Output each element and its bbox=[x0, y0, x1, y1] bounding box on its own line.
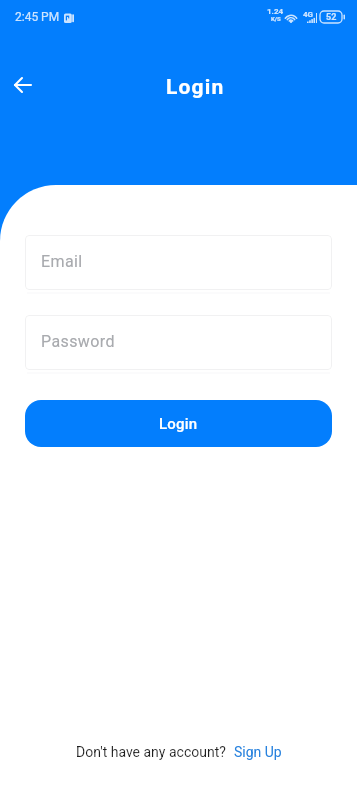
button[interactable]: Back bbox=[1, 65, 45, 105]
staticText: Sign Up bbox=[234, 744, 282, 760]
staticText: 1.24 bbox=[267, 7, 284, 16]
staticText: Email bbox=[41, 252, 83, 271]
staticText: 52 bbox=[326, 12, 337, 23]
button[interactable]: Sign Up bbox=[234, 744, 282, 760]
staticText: Login bbox=[166, 75, 225, 100]
button[interactable]: Password bbox=[25, 315, 332, 370]
button[interactable]: Email bbox=[25, 235, 332, 290]
staticText: 4G bbox=[303, 10, 314, 19]
staticText: Login bbox=[159, 415, 198, 433]
staticText: Password bbox=[41, 332, 115, 351]
staticText: 2:45 PM bbox=[15, 10, 60, 24]
staticText: Don't have any account? bbox=[76, 744, 226, 760]
button[interactable]: Login bbox=[25, 400, 332, 447]
staticText: K/S bbox=[271, 15, 281, 22]
